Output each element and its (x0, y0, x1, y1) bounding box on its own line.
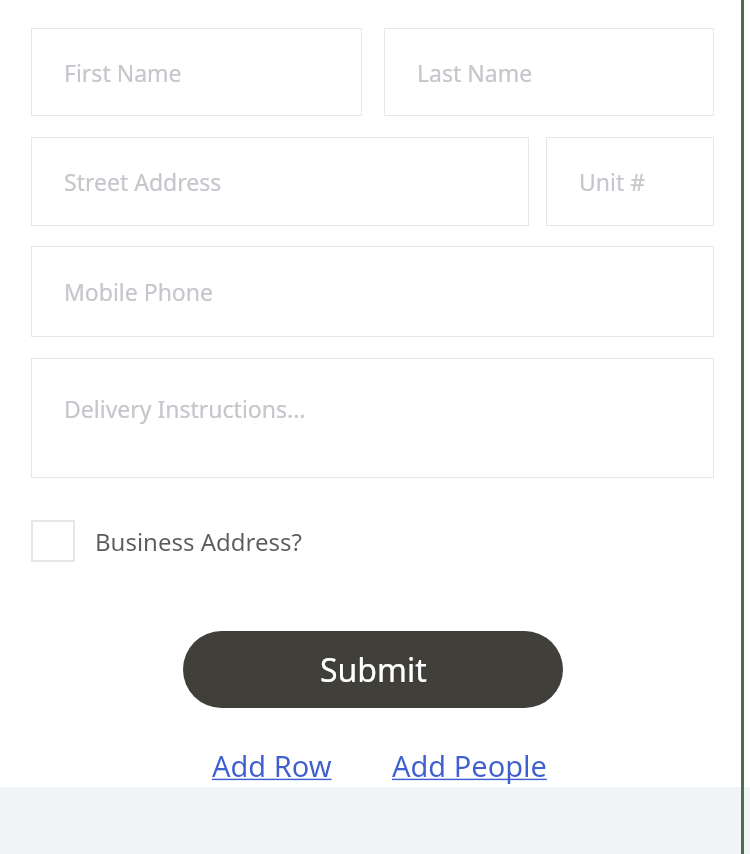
button[interactable]: Add People (392, 746, 547, 785)
staticText: Last Name (417, 57, 533, 88)
button[interactable]: Street Address (31, 137, 529, 226)
button[interactable]: Mobile Phone (31, 246, 714, 337)
staticText: Add People (392, 746, 547, 785)
staticText: Street Address (64, 166, 222, 197)
button[interactable]: Unit # (546, 137, 714, 226)
staticText: Add Row (212, 746, 332, 785)
button[interactable]: Delivery Instructions... (31, 358, 714, 478)
button[interactable]: Business Address? (31, 520, 302, 562)
button[interactable]: First Name (31, 28, 362, 116)
staticText: First Name (64, 57, 182, 88)
staticText: Business Address? (95, 525, 302, 558)
staticText: Delivery Instructions... (64, 393, 306, 424)
staticText: Unit # (579, 166, 646, 197)
staticText: Submit (320, 648, 427, 692)
button[interactable]: Last Name (384, 28, 714, 116)
staticText: Mobile Phone (64, 276, 213, 307)
button[interactable]: Submit (183, 631, 563, 708)
button[interactable]: Add Row (212, 746, 332, 785)
